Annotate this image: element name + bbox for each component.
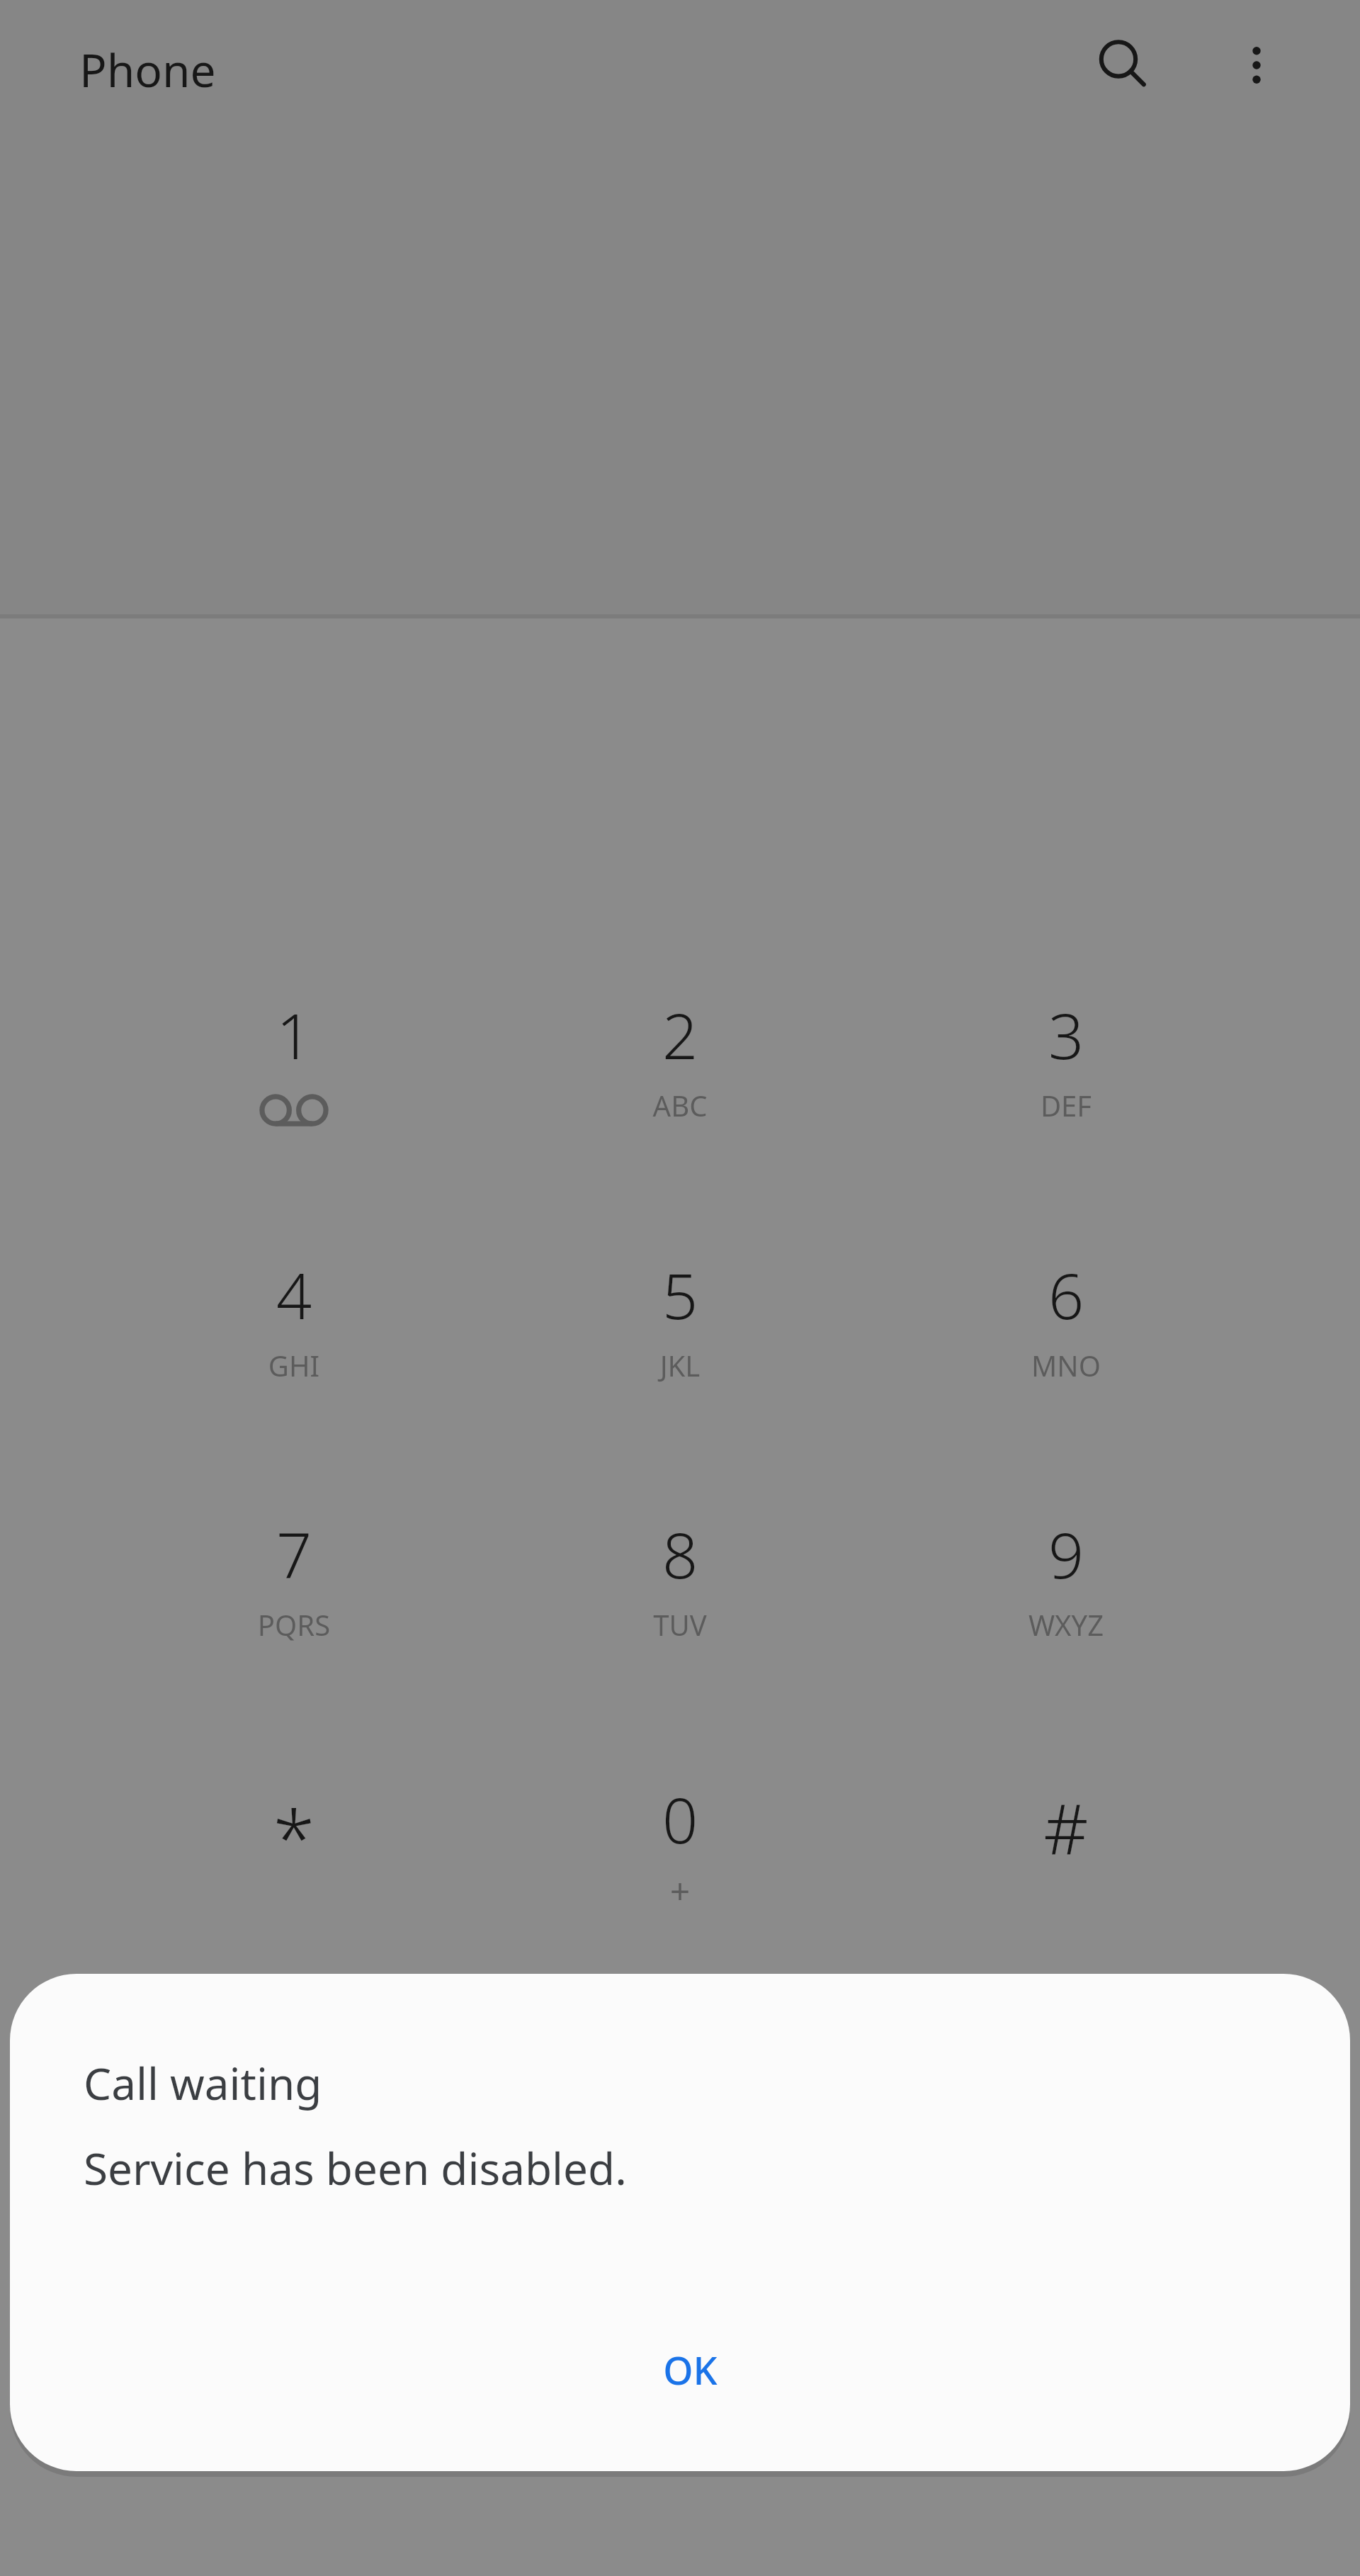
staticText: 5: [528, 1253, 832, 1338]
staticText: 1: [142, 993, 446, 1078]
staticText: JKL: [528, 1346, 832, 1384]
staticText: OK: [663, 2344, 718, 2396]
staticText: DEF: [914, 1086, 1218, 1124]
staticText: #: [914, 1780, 1218, 1874]
staticText: Service has been disabled.: [84, 2138, 627, 2198]
button[interactable]: 1: [142, 960, 446, 1204]
button[interactable]: 8: [528, 1479, 832, 1723]
staticText: PQRS: [142, 1605, 446, 1644]
staticText: ABC: [528, 1086, 832, 1124]
button[interactable]: 3: [914, 960, 1218, 1204]
staticText: 0: [528, 1777, 832, 1862]
button[interactable]: 0: [528, 1744, 832, 1988]
button[interactable]: #: [914, 1744, 1218, 1988]
staticText: *: [142, 1785, 446, 1889]
button[interactable]: *: [142, 1744, 446, 1988]
staticText: GHI: [142, 1346, 446, 1384]
button[interactable]: 6: [914, 1220, 1218, 1464]
button[interactable]: 2: [528, 960, 832, 1204]
button[interactable]: Search: [1075, 17, 1172, 113]
button[interactable]: 4: [142, 1220, 446, 1464]
button[interactable]: More options: [1208, 17, 1305, 113]
staticText: 6: [914, 1253, 1218, 1338]
staticText: TUV: [528, 1605, 832, 1644]
staticText: 7: [142, 1512, 446, 1597]
staticText: 3: [914, 993, 1218, 1078]
staticText: 8: [528, 1512, 832, 1597]
staticText: Phone: [79, 39, 216, 101]
staticText: 9: [914, 1512, 1218, 1597]
button[interactable]: 7: [142, 1479, 446, 1723]
button[interactable]: OK: [577, 2318, 803, 2422]
staticText: Call waiting: [84, 2053, 322, 2113]
button[interactable]: 9: [914, 1479, 1218, 1723]
staticText: WXYZ: [914, 1605, 1218, 1644]
button[interactable]: 5: [528, 1220, 832, 1464]
staticText: 4: [142, 1253, 446, 1338]
staticText: 2: [528, 993, 832, 1078]
staticText: +: [528, 1866, 832, 1914]
staticText: MNO: [914, 1346, 1218, 1384]
